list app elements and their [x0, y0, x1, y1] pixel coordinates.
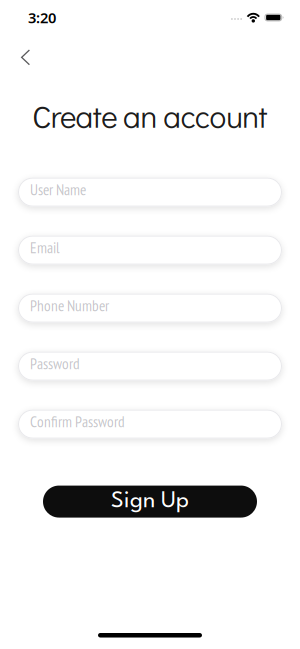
- staticText: 3:20: [28, 8, 56, 27]
- textField[interactable]: Phone Number: [0, 294, 300, 323]
- staticText: Sign Up: [111, 490, 189, 513]
- textField[interactable]: Email: [0, 236, 300, 265]
- staticText: Password: [30, 354, 80, 373]
- staticText: Email: [30, 238, 60, 257]
- textField[interactable]: Confirm Password: [0, 410, 300, 439]
- staticText: Phone Number: [30, 296, 109, 315]
- button[interactable]: Back: [0, 35, 30, 65]
- staticText: Confirm Password: [30, 412, 125, 431]
- textField[interactable]: User Name: [0, 178, 300, 207]
- textField[interactable]: Password: [0, 352, 300, 381]
- staticText: User Name: [30, 180, 86, 199]
- button[interactable]: Sign Up: [43, 486, 257, 518]
- staticText: Create an account: [32, 95, 268, 136]
